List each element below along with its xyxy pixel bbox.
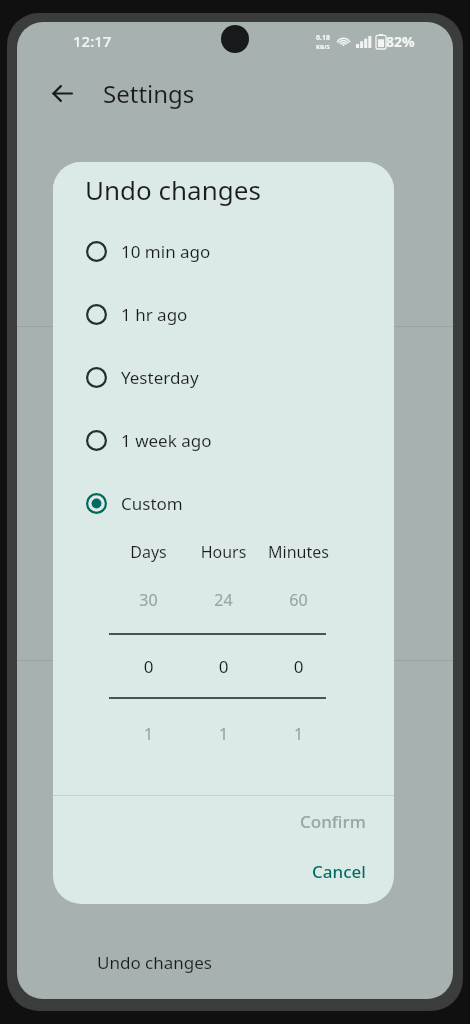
staticText: 1 xyxy=(186,723,261,745)
staticText: 82% xyxy=(386,32,415,51)
button[interactable]: 10 min ago xyxy=(53,220,394,283)
staticText: Custom xyxy=(121,492,183,515)
staticText: 1 hr ago xyxy=(121,303,188,326)
staticText: Confirm xyxy=(300,810,366,833)
staticText: Undo changes xyxy=(85,172,261,207)
staticText: 0.18 xyxy=(316,33,330,43)
button[interactable]: 1 week ago xyxy=(53,409,394,472)
staticText: Hours xyxy=(186,541,261,563)
staticText: 10 min ago xyxy=(121,240,211,263)
staticText: Cancel xyxy=(312,860,366,883)
staticText: 1 week ago xyxy=(121,429,212,452)
staticText: 12:17 xyxy=(73,31,112,51)
staticText: 24 xyxy=(186,589,261,611)
staticText: 0 xyxy=(186,655,261,678)
button[interactable]: 1 hr ago xyxy=(53,283,394,346)
button[interactable]: Yesterday xyxy=(53,346,394,409)
staticText: 0 xyxy=(111,655,186,678)
staticText: Undo changes from xyxy=(85,186,234,208)
staticText: 1 xyxy=(111,723,186,745)
button[interactable]: Custom xyxy=(53,472,394,535)
button[interactable]: Undo changes xyxy=(17,925,453,999)
staticText: Yesterday xyxy=(121,366,199,389)
staticText: Undo changes xyxy=(97,951,212,974)
staticText: 1 xyxy=(261,723,336,745)
button[interactable]: Back xyxy=(39,70,85,116)
button[interactable]: Cancel xyxy=(53,846,394,896)
staticText: Days xyxy=(111,541,186,563)
staticText: KB/S xyxy=(316,43,330,51)
staticText: Minutes xyxy=(261,541,336,563)
staticText: 30 xyxy=(111,589,186,611)
staticText: 0 xyxy=(261,655,336,678)
button[interactable]: 0 xyxy=(111,655,336,678)
staticText: 60 xyxy=(261,589,336,611)
button[interactable]: Confirm xyxy=(53,796,394,846)
staticText: Settings xyxy=(103,77,195,110)
